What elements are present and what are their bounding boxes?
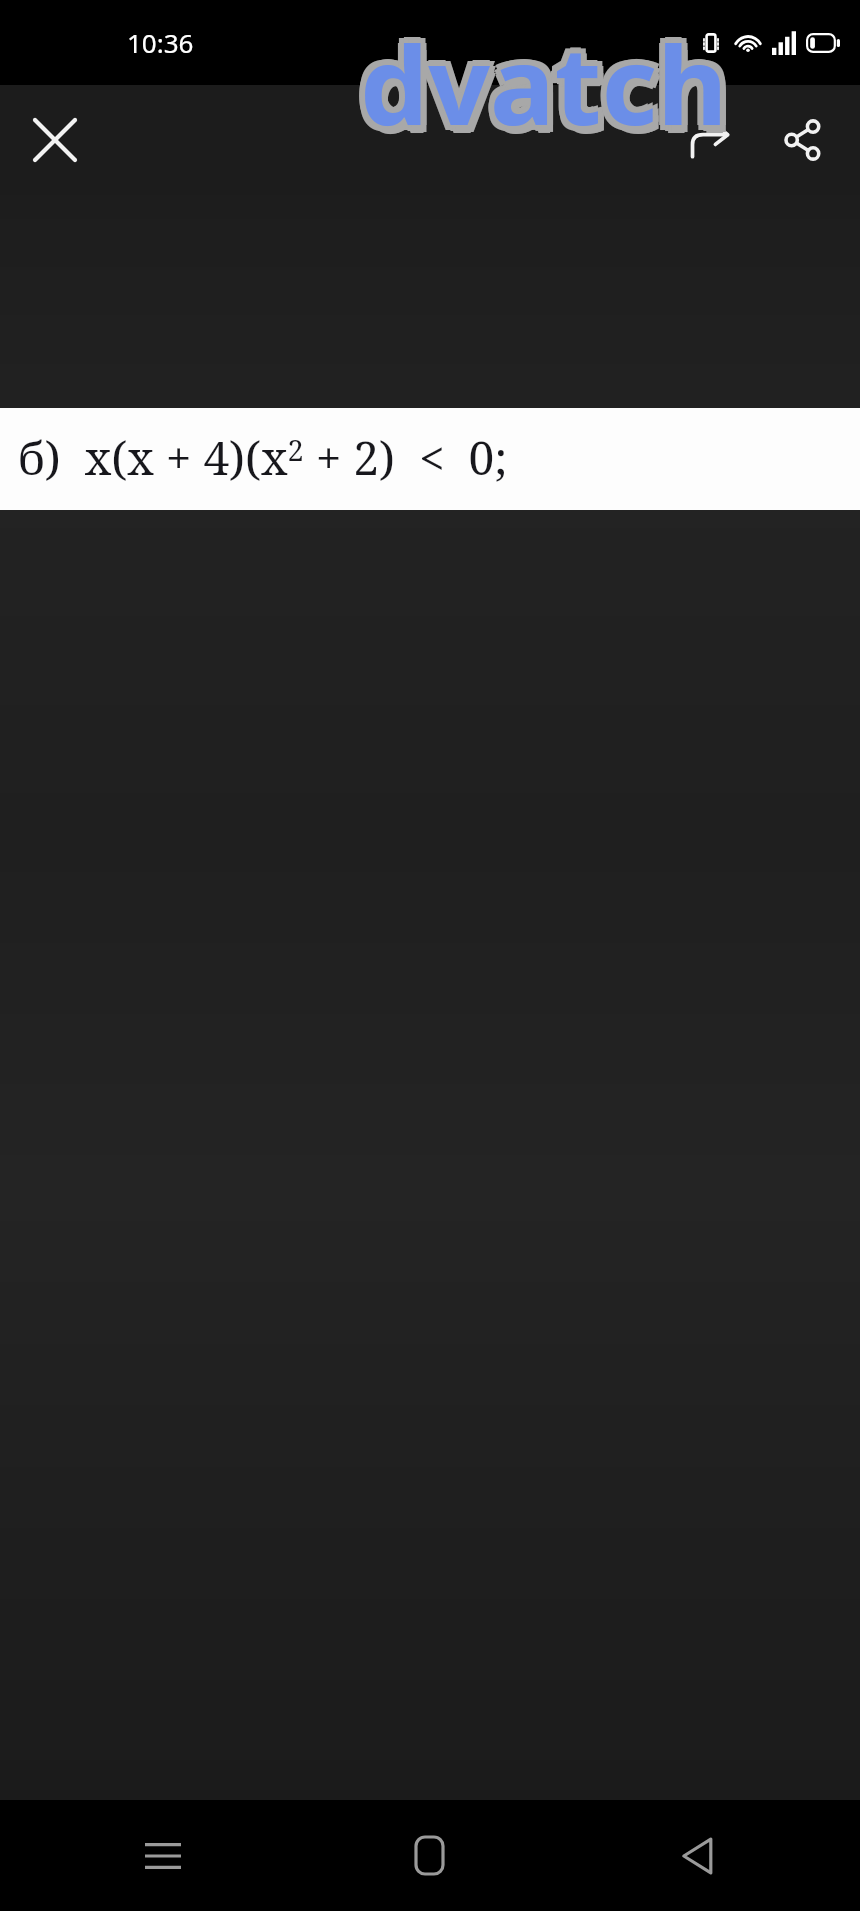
- staticText: dvatch: [355, 15, 723, 162]
- button[interactable]: Forward: [678, 107, 744, 173]
- button[interactable]: Share: [770, 107, 836, 173]
- staticText: dvatch: [366, 17, 734, 164]
- staticText: dvatch: [355, 5, 723, 152]
- staticText: dvatch: [360, 16, 728, 163]
- staticText: б) x(x + 4)(x2 + 2) < 0;: [18, 426, 508, 489]
- staticText: dvatch: [365, 5, 733, 152]
- staticText: dvatch: [365, 15, 733, 162]
- button[interactable]: Recent apps: [30, 1800, 296, 1911]
- staticText: dvatch: [354, 10, 722, 157]
- button[interactable]: Back: [563, 1800, 830, 1911]
- staticText: 10:36: [127, 25, 194, 60]
- staticText: dvatch: [360, 4, 728, 151]
- button[interactable]: Home: [296, 1800, 563, 1911]
- button[interactable]: Close: [20, 105, 90, 175]
- staticText: dvatch: [360, 10, 728, 157]
- staticText: dvatch: [363, 18, 731, 165]
- staticText: dvatch: [366, 10, 734, 157]
